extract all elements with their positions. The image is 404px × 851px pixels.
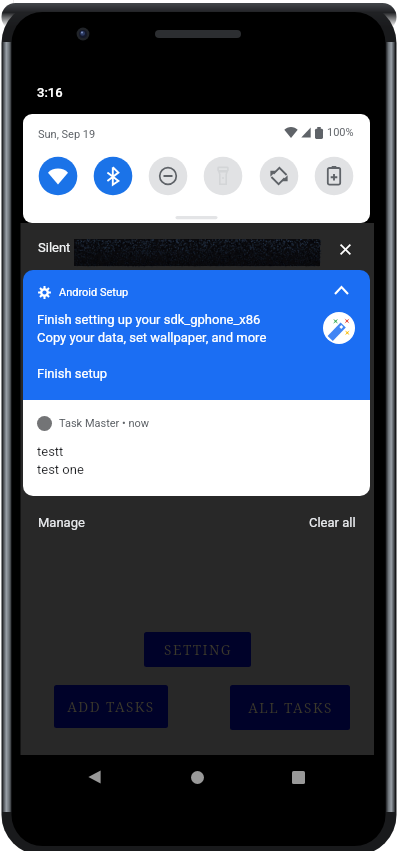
staticText: SETTING (164, 640, 232, 659)
button[interactable]: SETTING (144, 632, 251, 667)
staticText: ALL TASKS (248, 698, 333, 717)
button[interactable]: Back (68, 757, 120, 797)
staticText: Finish setup (37, 366, 108, 381)
button[interactable]: Android Setup (23, 270, 370, 400)
button[interactable]: Clear all (301, 509, 364, 535)
staticText: Copy your data, set wallpaper, and more (37, 330, 267, 345)
staticText: Task Master • now (59, 417, 150, 430)
staticText: 3:16 (37, 85, 63, 100)
staticText: Android Setup (59, 286, 129, 299)
button[interactable]: Finish setup (37, 366, 108, 381)
staticText: Silent (38, 240, 71, 255)
staticText: Manage (38, 515, 85, 530)
button[interactable]: Clear silent notifications (331, 235, 359, 263)
staticText: Finish setting up your sdk_gphone_x86 (37, 312, 261, 327)
button[interactable]: Recent apps (272, 757, 324, 797)
button[interactable]: Home (171, 757, 223, 797)
staticText: testt (37, 444, 64, 459)
staticText: test one (37, 462, 84, 477)
button[interactable]: ADD TASKS (54, 685, 168, 728)
staticText: ADD TASKS (67, 697, 155, 716)
staticText: Sun, Sep 19 (38, 128, 96, 141)
button[interactable]: Collapse notification (326, 275, 356, 305)
button[interactable]: ALL TASKS (230, 685, 350, 730)
staticText: Clear all (309, 515, 356, 530)
staticText: 100% (327, 126, 354, 139)
button[interactable]: Task Master • now (23, 400, 370, 496)
button[interactable]: Manage (30, 509, 93, 535)
